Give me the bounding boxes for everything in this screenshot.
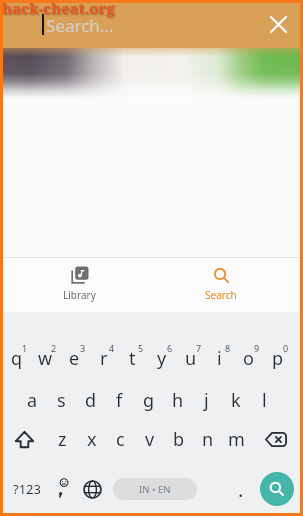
staticText: y	[157, 346, 167, 371]
staticText: e	[69, 346, 80, 371]
button[interactable]: IN • EN	[113, 478, 197, 500]
button[interactable]: i	[205, 338, 234, 378]
button[interactable]: y	[147, 338, 176, 378]
button[interactable]	[262, 8, 294, 40]
staticText: i	[217, 346, 222, 371]
staticText: t	[129, 346, 136, 371]
button[interactable]: a	[18, 380, 47, 420]
staticText: hack-cheat.org	[2, 0, 115, 18]
button[interactable]: l	[250, 380, 279, 420]
button[interactable]: c	[106, 419, 135, 459]
staticText: l	[262, 388, 267, 413]
staticText: a	[27, 388, 38, 413]
button[interactable]: w	[31, 338, 60, 378]
staticText: s	[57, 388, 66, 413]
button[interactable]	[0, 419, 48, 459]
button[interactable]: t	[118, 338, 147, 378]
staticText: 9	[254, 342, 260, 354]
button[interactable]: n	[193, 419, 222, 459]
button[interactable]: e	[60, 338, 89, 378]
staticText: 5	[138, 342, 144, 354]
staticText: q	[11, 346, 23, 371]
button[interactable]: s	[47, 380, 76, 420]
staticText: 7	[196, 342, 202, 354]
staticText: ?123	[13, 480, 41, 498]
staticText: h	[172, 388, 184, 413]
staticText: f	[116, 388, 123, 413]
staticText: Search	[205, 288, 237, 302]
staticText: 2	[51, 342, 57, 354]
staticText: Search...	[46, 14, 114, 37]
button[interactable]: q	[2, 338, 31, 378]
button[interactable]: x	[77, 419, 106, 459]
staticText: .	[238, 476, 244, 503]
staticText: z	[58, 427, 67, 452]
button[interactable]: o	[234, 338, 263, 378]
staticText: w	[38, 346, 53, 371]
staticText: p	[272, 346, 284, 371]
staticText: 1	[22, 342, 28, 354]
staticText: 3	[80, 342, 86, 354]
button[interactable]: b	[164, 419, 193, 459]
staticText: j	[204, 388, 209, 413]
staticText: b	[173, 427, 185, 452]
button[interactable]: Library	[0, 257, 151, 312]
staticText: v	[145, 427, 155, 452]
button[interactable]: p	[263, 338, 292, 378]
button[interactable]: ?123	[4, 469, 50, 509]
staticText: o	[243, 346, 254, 371]
staticText: k	[231, 388, 241, 413]
staticText: IN • EN	[139, 483, 171, 496]
button[interactable]: g	[134, 380, 163, 420]
staticText: 4	[109, 342, 115, 354]
button[interactable]	[78, 469, 106, 509]
staticText: c	[116, 427, 125, 452]
staticText: n	[202, 427, 214, 452]
button[interactable]	[50, 469, 74, 509]
staticText: g	[143, 388, 155, 413]
button[interactable]: m	[222, 419, 251, 459]
button[interactable]: Search	[151, 257, 303, 312]
staticText: r	[100, 346, 108, 371]
staticText: m	[228, 427, 245, 452]
button[interactable]: h	[163, 380, 192, 420]
button[interactable]	[260, 472, 294, 506]
button[interactable]: j	[192, 380, 221, 420]
button[interactable]: .	[227, 469, 255, 509]
button[interactable]	[251, 419, 300, 459]
staticText: 0	[283, 342, 289, 354]
button[interactable]: f	[105, 380, 134, 420]
button[interactable]: k	[221, 380, 250, 420]
button[interactable]: u	[176, 338, 205, 378]
staticText: u	[185, 346, 197, 371]
button[interactable]: v	[135, 419, 164, 459]
staticText: 8	[225, 342, 231, 354]
staticText: d	[85, 388, 97, 413]
button[interactable]: d	[76, 380, 105, 420]
staticText: x	[87, 427, 97, 452]
staticText: Library	[63, 288, 96, 302]
button[interactable]: r	[89, 338, 118, 378]
staticText: 6	[167, 342, 173, 354]
button[interactable]: z	[48, 419, 77, 459]
